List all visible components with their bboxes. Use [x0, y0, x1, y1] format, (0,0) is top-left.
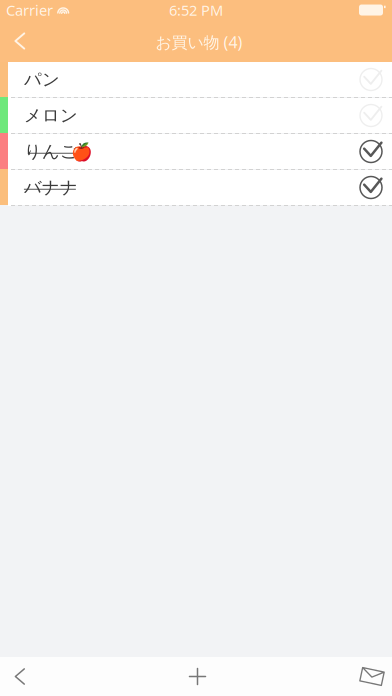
button[interactable]: メロン: [0, 98, 392, 133]
button[interactable]: パン: [0, 62, 392, 97]
button[interactable]: Add item: [170, 657, 218, 696]
staticText: りんご: [24, 141, 78, 162]
button[interactable]: Back: [0, 20, 41, 62]
button[interactable]: バナナ: [0, 170, 392, 205]
button[interactable]: Back: [0, 657, 41, 696]
staticText: パン: [24, 69, 60, 90]
staticText: Carrier: [6, 0, 53, 20]
staticText: 6:52 PM: [169, 0, 223, 20]
staticText: メロン: [24, 105, 78, 126]
staticText: お買い物 (4): [155, 31, 242, 53]
staticText: バナナ: [24, 177, 78, 198]
button[interactable]: りんご: [0, 134, 392, 169]
staticText: 🍎: [71, 143, 93, 162]
button[interactable]: Share by mail: [348, 657, 392, 696]
